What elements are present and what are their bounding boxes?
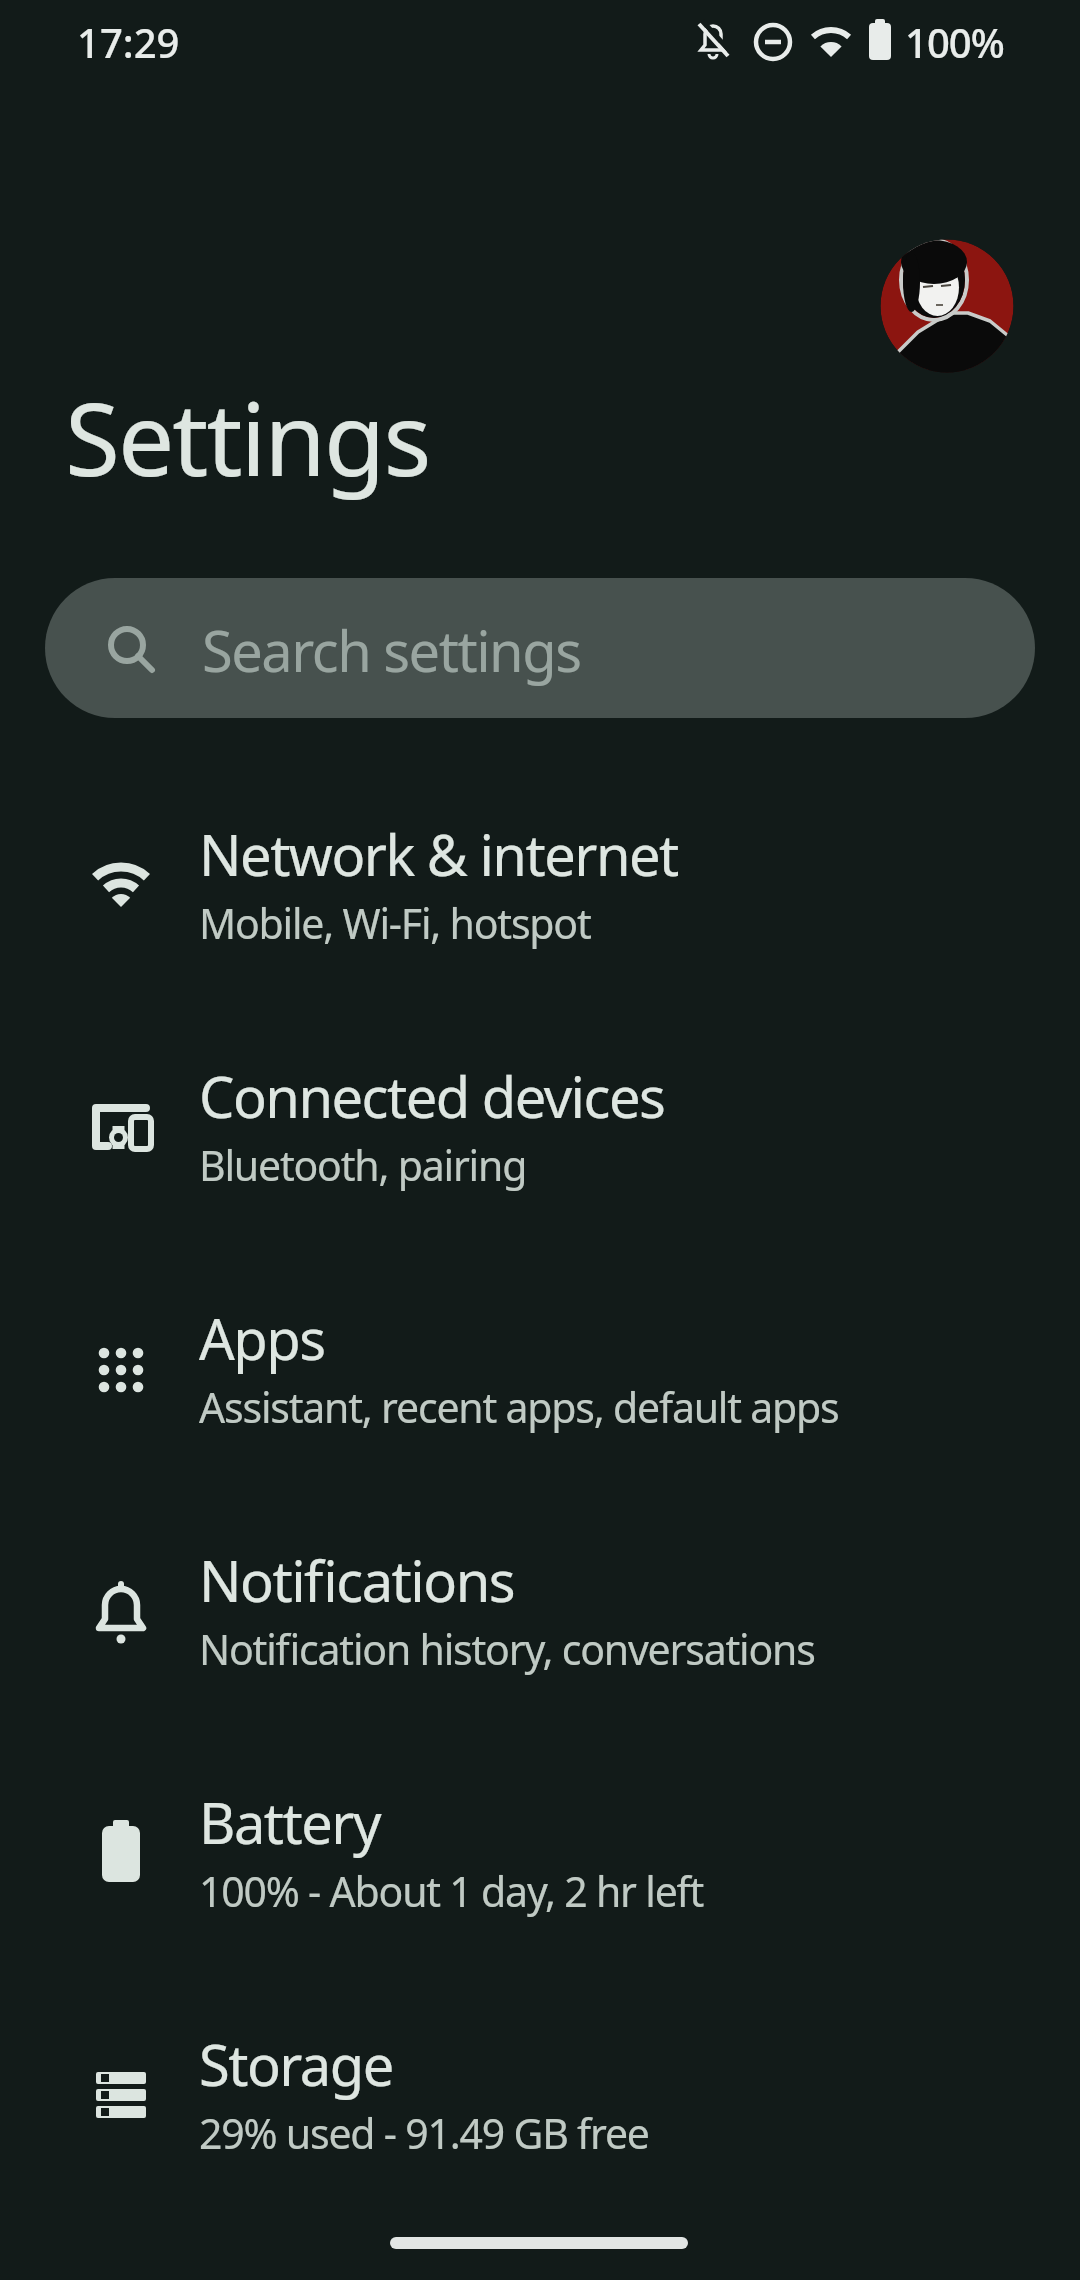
staticText: 17:29 [77, 15, 180, 69]
staticText: 29% used - 91.49 GB free [199, 2105, 649, 2161]
staticText: 100% [905, 15, 1004, 69]
staticText: Search settings [202, 612, 581, 688]
staticText: Bluetooth, pairing [199, 1137, 527, 1193]
staticText: Apps [199, 1300, 325, 1376]
staticText: 100% - About 1 day, 2 hr left [199, 1863, 704, 1919]
staticText: Battery [199, 1784, 381, 1860]
staticText: Settings [65, 369, 430, 505]
staticText: Mobile, Wi-Fi, hotspot [199, 895, 591, 951]
staticText: Notifications [199, 1542, 515, 1618]
staticText: Network & internet [199, 816, 678, 892]
staticText: Connected devices [199, 1058, 665, 1134]
staticText: Storage [199, 2026, 393, 2102]
staticText: Notification history, conversations [199, 1621, 815, 1677]
staticText: Assistant, recent apps, default apps [199, 1379, 839, 1435]
